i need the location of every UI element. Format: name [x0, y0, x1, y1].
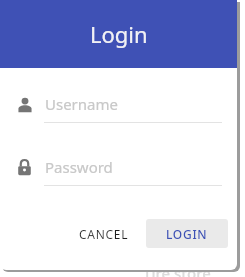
staticText: Login	[90, 19, 148, 49]
staticText: CANCEL	[79, 226, 129, 242]
button[interactable]: Username field	[0, 94, 237, 123]
button[interactable]: LOGIN	[146, 219, 228, 248]
button[interactable]: Password field	[0, 157, 237, 186]
staticText: Tire store	[143, 263, 211, 277]
button[interactable]: CANCEL	[66, 219, 142, 248]
staticText: Username	[45, 94, 118, 114]
staticText: LOGIN	[166, 226, 208, 242]
staticText: Password	[45, 157, 113, 177]
